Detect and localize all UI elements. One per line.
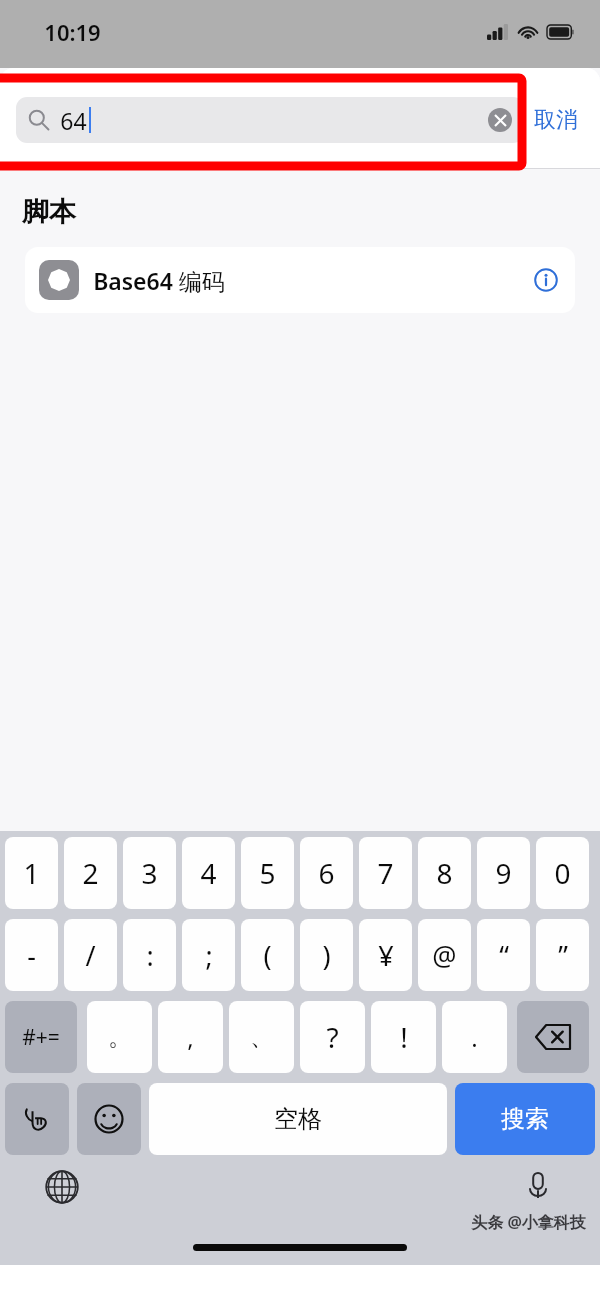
- button[interactable]: 空格: [149, 1083, 447, 1155]
- staticText: ?: [326, 1018, 339, 1056]
- button[interactable]: 8: [418, 837, 471, 909]
- button[interactable]: 0: [536, 837, 589, 909]
- button[interactable]: ,: [158, 1001, 223, 1073]
- button[interactable]: 2: [64, 837, 117, 909]
- button[interactable]: :: [123, 919, 176, 991]
- button[interactable]: Handwriting input: [5, 1083, 69, 1155]
- staticText: 5: [259, 854, 276, 892]
- staticText: ): [322, 937, 331, 974]
- staticText: @: [432, 937, 457, 974]
- button[interactable]: 3: [123, 837, 176, 909]
- button[interactable]: .: [442, 1001, 507, 1073]
- staticText: #+=: [22, 1023, 60, 1052]
- staticText: 脚本: [22, 195, 76, 229]
- button[interactable]: Base64 编码: [25, 247, 575, 313]
- staticText: 空格: [274, 1104, 322, 1134]
- button[interactable]: 9: [477, 837, 530, 909]
- staticText: 8: [436, 854, 453, 892]
- button[interactable]: “: [477, 919, 530, 991]
- staticText: ”: [558, 937, 568, 974]
- staticText: 取消: [534, 106, 578, 134]
- staticText: /: [85, 937, 96, 974]
- button[interactable]: ¥: [359, 919, 412, 991]
- button[interactable]: Clear text: [488, 108, 512, 132]
- staticText: 64: [60, 105, 87, 136]
- staticText: !: [400, 1018, 408, 1056]
- staticText: 0: [554, 854, 571, 892]
- button[interactable]: Backspace: [517, 1001, 589, 1073]
- button[interactable]: 。: [87, 1001, 152, 1073]
- staticText: 6: [318, 854, 335, 892]
- staticText: ,: [187, 1021, 194, 1054]
- button[interactable]: 7: [359, 837, 412, 909]
- button[interactable]: 5: [241, 837, 294, 909]
- staticText: 头条 @小拿科技: [471, 1211, 586, 1233]
- staticText: .: [471, 1021, 478, 1054]
- button[interactable]: ?: [300, 1001, 365, 1073]
- button[interactable]: (: [241, 919, 294, 991]
- button[interactable]: Dictation: [518, 1167, 558, 1207]
- staticText: 2: [82, 854, 99, 892]
- button[interactable]: 4: [182, 837, 235, 909]
- staticText: 搜索: [501, 1104, 549, 1134]
- staticText: 1: [23, 854, 40, 892]
- button[interactable]: !: [371, 1001, 436, 1073]
- staticText: 4: [200, 854, 217, 892]
- staticText: (: [263, 937, 272, 974]
- button[interactable]: /: [64, 919, 117, 991]
- staticText: :: [146, 937, 154, 974]
- button[interactable]: #+=: [5, 1001, 77, 1073]
- button[interactable]: 、: [229, 1001, 294, 1073]
- staticText: ¥: [378, 937, 394, 974]
- staticText: -: [27, 937, 36, 974]
- staticText: 。: [108, 1022, 132, 1052]
- staticText: 、: [250, 1022, 274, 1052]
- staticText: 7: [377, 854, 394, 892]
- button[interactable]: 64: [16, 97, 524, 143]
- staticText: ;: [205, 937, 213, 974]
- button[interactable]: ;: [182, 919, 235, 991]
- button[interactable]: @: [418, 919, 471, 991]
- staticText: “: [499, 937, 509, 974]
- button[interactable]: 取消: [524, 98, 588, 142]
- button[interactable]: Switch keyboard: [42, 1167, 82, 1207]
- button[interactable]: 6: [300, 837, 353, 909]
- button[interactable]: ”: [536, 919, 589, 991]
- button[interactable]: ): [300, 919, 353, 991]
- staticText: 10:19: [44, 17, 101, 47]
- button[interactable]: Info: [531, 265, 561, 295]
- staticText: 9: [495, 854, 512, 892]
- button[interactable]: 1: [5, 837, 58, 909]
- staticText: 3: [141, 854, 158, 892]
- staticText: Base64 编码: [93, 265, 225, 296]
- button[interactable]: 搜索: [455, 1083, 595, 1155]
- button[interactable]: -: [5, 919, 58, 991]
- button[interactable]: Emoji: [77, 1083, 141, 1155]
